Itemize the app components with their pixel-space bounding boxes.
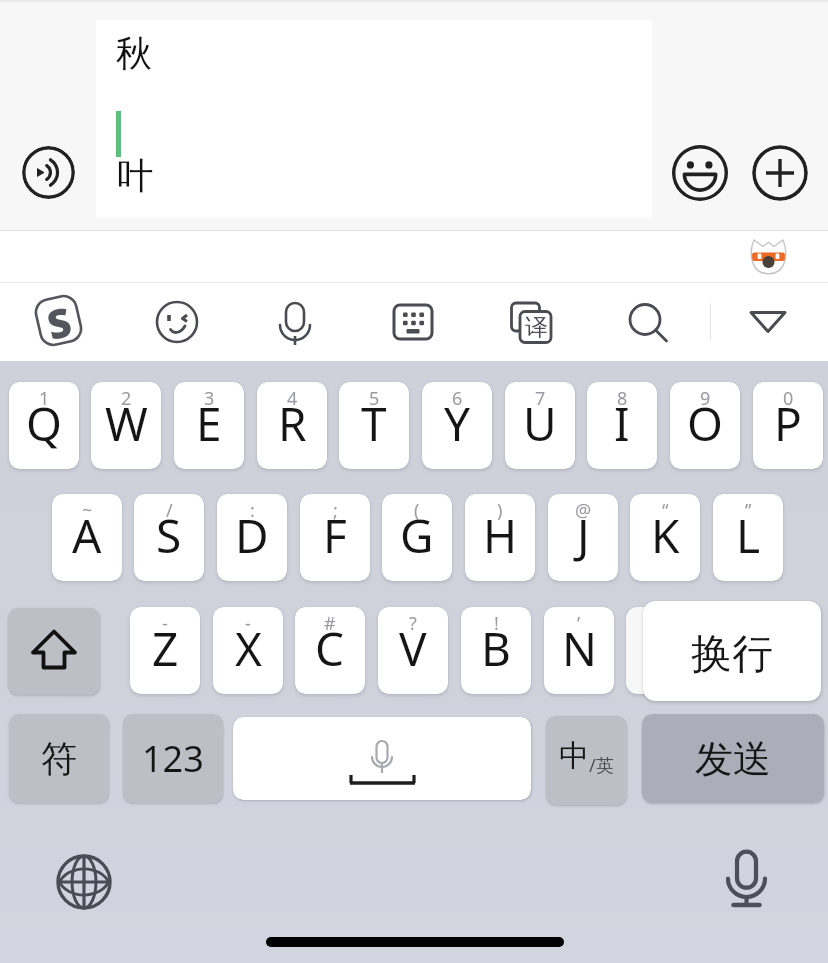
staticText: Q (26, 392, 62, 455)
staticText: S (156, 504, 182, 567)
button[interactable]: Chinese English toggle (546, 716, 627, 805)
button[interactable]: 8 (587, 382, 657, 469)
staticText: 123 (142, 734, 204, 783)
staticText: I (614, 392, 630, 455)
staticText: 发送 (695, 735, 771, 783)
button[interactable]: Voice input (271, 298, 319, 346)
button[interactable]: M (626, 607, 696, 694)
button[interactable]: Shift (8, 608, 100, 695)
staticText: G (400, 504, 434, 567)
staticText: 1 (39, 386, 50, 411)
button[interactable]: 秋 (96, 20, 652, 218)
staticText: 8 (617, 386, 628, 411)
button[interactable]: / (134, 494, 204, 581)
button[interactable]: - (213, 607, 283, 694)
button[interactable]: Search (624, 298, 672, 346)
button[interactable]: Voice dictation (716, 845, 777, 906)
button[interactable]: More (752, 145, 808, 201)
button[interactable]: Sogou assistant (749, 236, 788, 275)
staticText: F (323, 504, 347, 567)
staticText: T (361, 392, 387, 455)
button[interactable]: ( (382, 494, 452, 581)
staticText: W (105, 392, 148, 455)
staticText: / (166, 498, 173, 523)
staticText: 秋 (116, 31, 152, 76)
staticText: R (278, 392, 307, 455)
staticText: A (72, 504, 102, 567)
button[interactable]: Sogou menu (34, 296, 83, 345)
staticText: H (483, 504, 518, 567)
staticText: V (399, 617, 427, 680)
button[interactable]: Emoji panel (153, 298, 201, 346)
button[interactable]: 7 (505, 382, 575, 469)
staticText: 译 (525, 313, 548, 342)
staticText: ’ (577, 611, 581, 636)
button[interactable]: ; (300, 494, 370, 581)
staticText: 符 (41, 736, 77, 781)
button[interactable]: ~ (52, 494, 122, 581)
staticText: 6 (452, 386, 463, 411)
staticText: O (687, 392, 723, 455)
button[interactable]: Hide keyboard (744, 298, 792, 346)
button[interactable]: “ (630, 494, 700, 581)
button[interactable]: 1 (9, 382, 79, 469)
staticText: D (235, 504, 269, 567)
staticText: ” (745, 498, 752, 523)
staticText: - (245, 611, 251, 636)
button[interactable]: 2 (91, 382, 161, 469)
staticText: 3 (204, 386, 215, 411)
button[interactable]: ) (465, 494, 535, 581)
button[interactable]: Keyboard settings (389, 298, 437, 346)
button[interactable]: 0 (753, 382, 823, 469)
button[interactable]: - (130, 607, 200, 694)
staticText: # (324, 611, 336, 636)
button[interactable]: 3 (174, 382, 244, 469)
button[interactable]: Switch input language (56, 854, 112, 910)
staticText: 换行 (691, 629, 773, 681)
button[interactable]: 6 (422, 382, 492, 469)
staticText: 中 (559, 737, 589, 775)
button[interactable]: @ (548, 494, 618, 581)
staticText: 5 (369, 386, 380, 411)
staticText: Z (152, 617, 179, 680)
staticText: E (196, 392, 222, 455)
staticText: U (523, 392, 557, 455)
button[interactable]: 符 (9, 714, 109, 803)
staticText: /英 (589, 753, 614, 778)
button[interactable]: Space (233, 717, 531, 800)
staticText: 0 (783, 386, 794, 411)
staticText: ? (409, 611, 417, 636)
button[interactable]: : (217, 494, 287, 581)
button[interactable]: 9 (670, 382, 740, 469)
staticText: 叶 (117, 153, 153, 198)
button[interactable]: Emoji (672, 145, 728, 201)
staticText: 2 (121, 386, 132, 411)
button[interactable]: 4 (257, 382, 327, 469)
staticText: Y (444, 392, 471, 455)
button[interactable]: # (295, 607, 365, 694)
staticText: 9 (700, 386, 711, 411)
staticText: L (736, 504, 761, 567)
button[interactable]: Translate (507, 298, 555, 346)
staticText: ~ (82, 498, 93, 523)
button[interactable]: ? (378, 607, 448, 694)
staticText: ; (333, 498, 338, 523)
button[interactable]: Voice input (22, 146, 75, 199)
staticText: ) (497, 498, 503, 523)
button[interactable]: 123 (123, 714, 223, 803)
staticText: 7 (535, 386, 546, 411)
staticText: P (774, 392, 802, 455)
button[interactable]: ! (461, 607, 531, 694)
staticText: ( (414, 498, 420, 523)
staticText: K (651, 504, 680, 567)
staticText: X (235, 617, 262, 680)
button[interactable]: ” (713, 494, 783, 581)
staticText: “ (662, 498, 669, 523)
button[interactable]: 发送 (642, 714, 824, 803)
button[interactable]: 换行 (643, 601, 821, 701)
staticText: S (42, 293, 76, 346)
button[interactable]: 5 (339, 382, 409, 469)
button[interactable]: ’ (544, 607, 614, 694)
staticText: : (250, 498, 255, 523)
staticText: C (315, 617, 345, 680)
